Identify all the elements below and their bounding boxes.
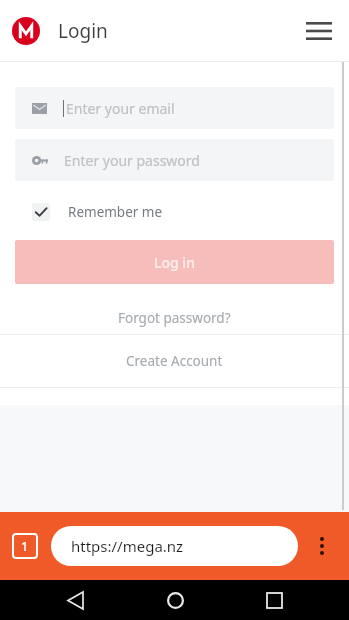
staticText: Login <box>58 18 108 44</box>
button[interactable]: Recent apps <box>250 580 298 620</box>
button[interactable]: Home <box>151 580 199 620</box>
button[interactable]: Back <box>51 580 99 620</box>
staticText: 1 <box>21 538 29 555</box>
button[interactable]: Remember me <box>15 198 163 226</box>
button[interactable]: Enter your password <box>15 139 334 181</box>
staticText: Enter your password <box>64 151 200 170</box>
staticText: Log in <box>154 253 195 272</box>
button[interactable]: https://mega.nz <box>51 526 298 566</box>
staticText: https://mega.nz <box>71 536 184 556</box>
button[interactable]: MEGA home <box>12 17 40 45</box>
staticText: Create Account <box>126 352 223 370</box>
button[interactable]: Create Account <box>0 335 349 387</box>
staticText: Forgot password? <box>118 309 231 327</box>
staticText: Remember me <box>68 203 163 221</box>
button[interactable]: Forgot password? <box>0 301 349 334</box>
button[interactable]: Enter your email <box>15 87 334 129</box>
staticText: Enter your email <box>66 99 175 118</box>
button[interactable]: Log in <box>15 240 334 284</box>
button[interactable]: More options <box>307 531 337 561</box>
button[interactable]: Menu <box>301 13 337 49</box>
button[interactable]: Tabs <box>12 533 38 559</box>
